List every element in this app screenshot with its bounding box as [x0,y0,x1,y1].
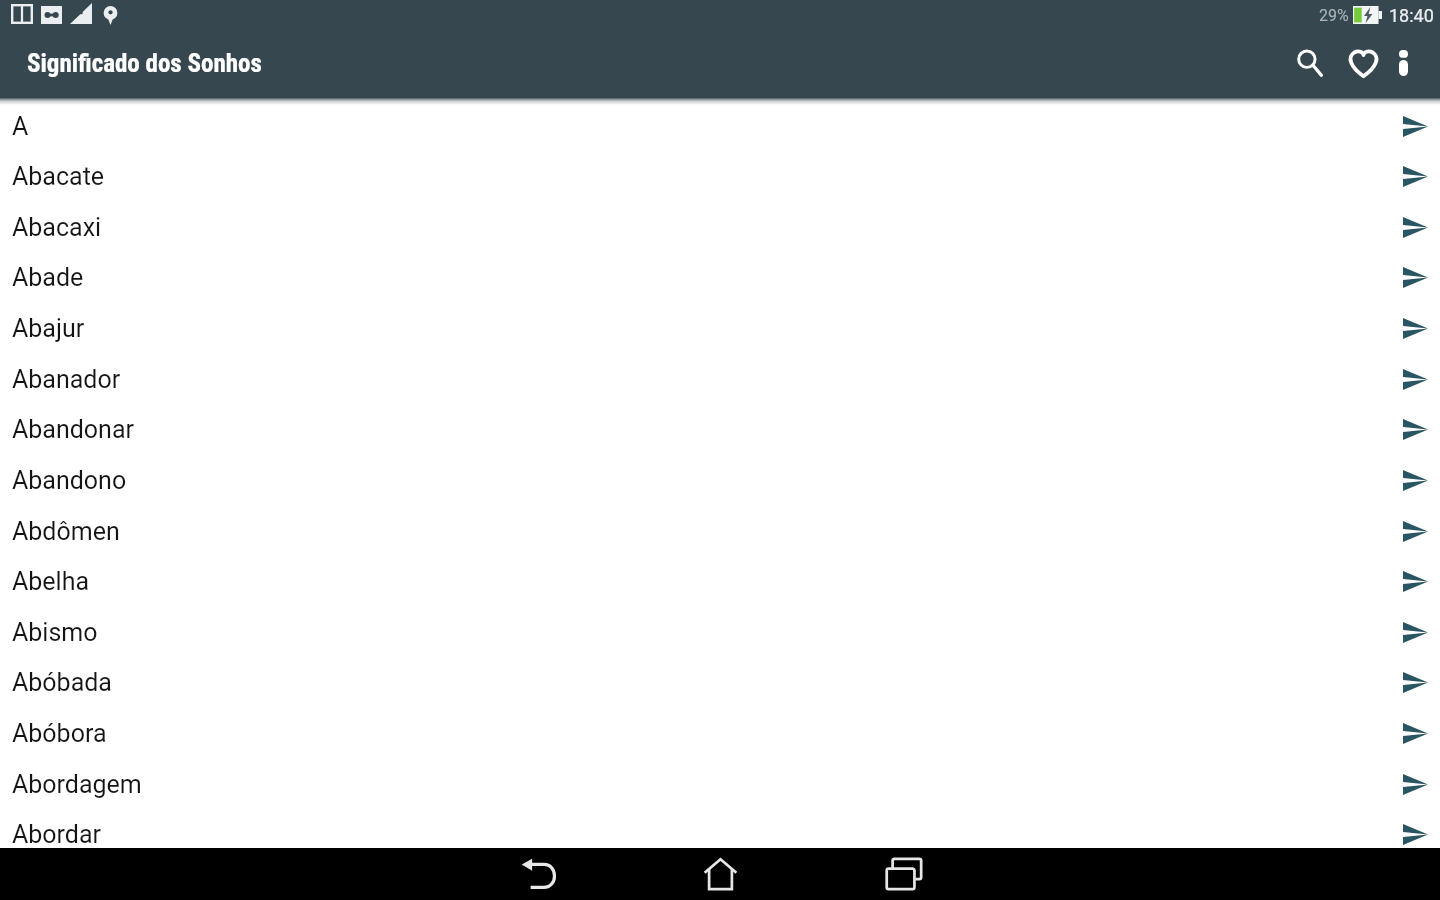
button[interactable]: A [0,101,1440,152]
button[interactable]: Search [1283,36,1336,92]
staticText: Abismo [12,618,98,647]
staticText: Abandono [12,466,127,495]
staticText: Abordar [12,820,102,848]
button[interactable]: Abordagem [0,759,1440,810]
staticText: 18:40 [1389,5,1434,26]
button[interactable]: Abdômen [0,506,1440,557]
button[interactable]: Abelha [0,556,1440,607]
button[interactable]: Home [680,848,760,900]
staticText: A [12,112,29,141]
button[interactable]: Abandonar [0,404,1440,455]
staticText: Abacate [12,162,105,191]
button[interactable]: Back [499,848,579,900]
button[interactable]: Abajur [0,303,1440,354]
button[interactable]: Abóbada [0,657,1440,708]
staticText: Abóbada [12,668,112,697]
button[interactable]: Abacaxi [0,202,1440,253]
staticText: Abandonar [12,415,134,444]
staticText: Abóbora [12,719,107,748]
button[interactable]: Recent apps [861,848,941,900]
staticText: Abacaxi [12,213,102,242]
staticText: Abajur [12,314,85,343]
button[interactable]: Abandono [0,455,1440,506]
staticText: Abade [12,263,84,292]
button[interactable]: Abordar [0,809,1440,848]
button[interactable]: Abóbora [0,708,1440,759]
staticText: Abanador [12,365,121,394]
staticText: 29% [1319,6,1349,25]
staticText: Significado dos Sonhos [27,49,262,78]
staticText: Abdômen [12,517,120,546]
button[interactable]: Abismo [0,607,1440,658]
staticText: Abordagem [12,770,142,799]
button[interactable]: Abade [0,252,1440,303]
staticText: Abelha [12,567,90,596]
button[interactable]: Abacate [0,151,1440,202]
button[interactable]: Abanador [0,354,1440,405]
button[interactable]: Favorites [1336,36,1390,92]
button[interactable]: More options [1390,36,1417,92]
